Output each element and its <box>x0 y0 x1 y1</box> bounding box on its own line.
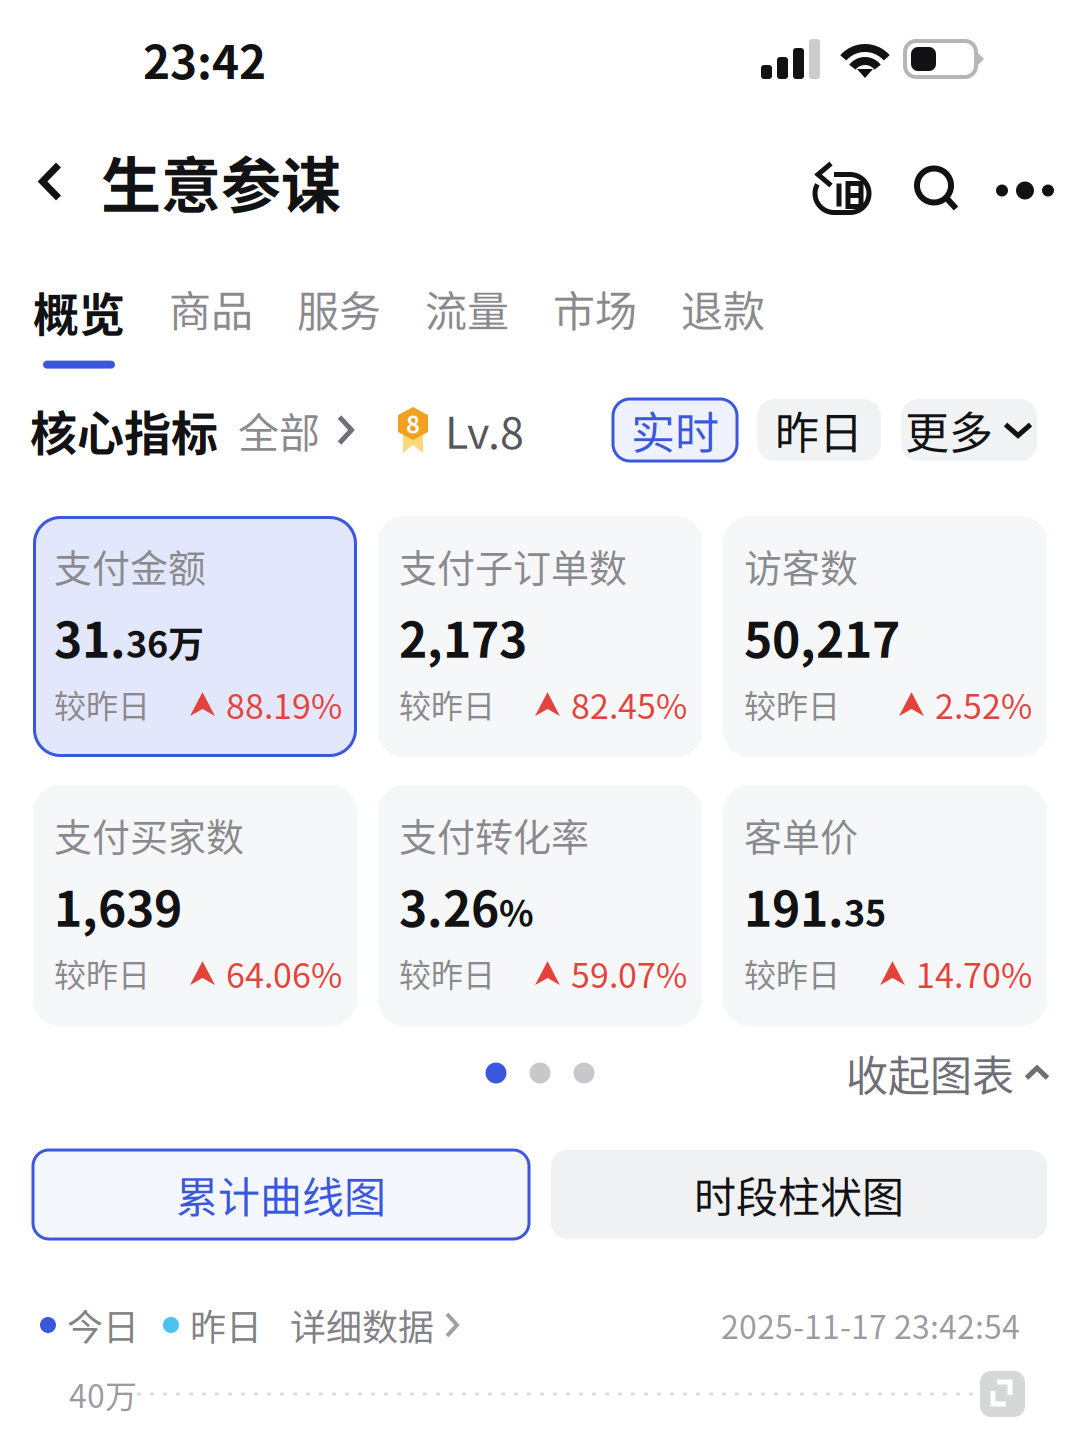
button[interactable]: 详细数据 <box>290 1299 459 1351</box>
staticText: 1,639 <box>54 871 182 940</box>
staticText: 191. <box>744 871 844 940</box>
staticText: 较昨日 <box>399 950 495 996</box>
staticText: 较昨日 <box>744 950 840 996</box>
staticText: 50,217 <box>744 602 900 671</box>
staticText: 更多 <box>905 398 993 462</box>
staticText: 昨日 <box>190 1299 262 1351</box>
button[interactable]: 访客数 <box>723 516 1047 757</box>
staticText: 64.06% <box>226 948 342 998</box>
staticText: 累计曲线图 <box>176 1164 386 1225</box>
button[interactable]: 时段柱状图 <box>551 1150 1047 1239</box>
button[interactable]: 收起图表 <box>846 1043 1050 1103</box>
staticText: 82.45% <box>571 679 687 729</box>
staticText: 流量 <box>425 278 509 339</box>
button[interactable]: 支付子订单数 <box>378 516 702 757</box>
staticText: 收起图表 <box>846 1043 1014 1103</box>
button[interactable]: 支付金额 <box>33 516 357 757</box>
staticText: Lv.8 <box>445 399 524 461</box>
staticText: 支付子订单数 <box>399 538 627 593</box>
button[interactable]: 概览 <box>33 278 125 369</box>
button[interactable]: 全部 <box>238 400 354 460</box>
button[interactable]: 客单价 <box>723 785 1047 1026</box>
staticText: 退款 <box>681 278 765 339</box>
staticText: 2,173 <box>399 602 527 671</box>
staticText: 3.26 <box>399 871 499 940</box>
staticText: 36万 <box>126 616 204 668</box>
button[interactable]: 累计曲线图 <box>33 1150 529 1239</box>
staticText: 访客数 <box>744 538 858 593</box>
staticText: 2025-11-17 23:42:54 <box>721 1302 1020 1348</box>
staticText: 88.19% <box>226 679 342 729</box>
button[interactable]: 支付转化率 <box>378 785 702 1026</box>
staticText: 较昨日 <box>399 681 495 727</box>
staticText: 40万 <box>69 1371 137 1417</box>
button[interactable]: 服务 <box>297 278 381 339</box>
staticText: 生意参谋 <box>101 138 341 225</box>
staticText: 商品 <box>169 278 253 339</box>
button[interactable]: 更多 <box>980 127 1080 235</box>
staticText: 市场 <box>553 278 637 339</box>
button[interactable]: 返回 <box>0 125 101 237</box>
staticText: 较昨日 <box>54 681 150 727</box>
staticText: 支付转化率 <box>399 807 589 862</box>
staticText: 35 <box>844 885 886 937</box>
button[interactable]: 流量 <box>425 278 509 339</box>
staticText: 服务 <box>297 278 381 339</box>
staticText: 详细数据 <box>290 1299 434 1351</box>
staticText: 2.52% <box>935 679 1032 729</box>
button[interactable]: 8 <box>396 399 524 461</box>
staticText: 全部 <box>238 400 320 460</box>
staticText: 时段柱状图 <box>694 1164 904 1225</box>
staticText: 客单价 <box>744 807 858 862</box>
button[interactable]: 搜索 <box>890 127 980 235</box>
button[interactable]: 商品 <box>169 278 253 339</box>
staticText: 31. <box>54 602 126 671</box>
staticText: 较昨日 <box>744 681 840 727</box>
button[interactable]: 回旧版 <box>796 127 890 235</box>
staticText: 支付买家数 <box>54 807 244 862</box>
staticText: 实时 <box>631 398 719 462</box>
staticText: % <box>499 885 534 937</box>
staticText: 今日 <box>67 1299 139 1351</box>
staticText: 概览 <box>33 278 125 345</box>
button[interactable]: 退款 <box>681 278 765 339</box>
button[interactable]: 昨日 <box>757 399 881 461</box>
staticText: 23:42 <box>143 26 266 92</box>
button[interactable]: 市场 <box>553 278 637 339</box>
button[interactable]: 更多 <box>901 399 1037 461</box>
button[interactable]: 实时 <box>613 399 737 461</box>
staticText: 59.07% <box>571 948 687 998</box>
staticText: 8 <box>406 406 420 440</box>
button[interactable]: 全屏查看 <box>980 1371 1025 1417</box>
staticText: 较昨日 <box>54 950 150 996</box>
staticText: 昨日 <box>775 398 863 462</box>
button[interactable]: 支付买家数 <box>33 785 357 1026</box>
staticText: 支付金额 <box>54 538 206 593</box>
staticText: 核心指标 <box>30 396 218 464</box>
staticText: 14.70% <box>916 948 1032 998</box>
